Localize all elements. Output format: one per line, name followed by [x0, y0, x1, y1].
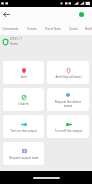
button[interactable]: Request output state — [3, 142, 44, 165]
staticText: Request the device status — [52, 100, 84, 108]
staticText: Notif — [85, 27, 92, 31]
staticText: Arm(Stay at home) — [55, 75, 82, 79]
staticText: Panel State — [45, 27, 61, 31]
button[interactable]: Arm — [3, 61, 44, 84]
button[interactable]: Notif — [84, 22, 92, 35]
staticText: Disarm — [18, 102, 29, 106]
staticText: Turn on the output — [10, 129, 37, 133]
button[interactable]: Arm(Stay at home) — [47, 61, 89, 84]
button[interactable]: Turn on the output — [3, 115, 44, 138]
button[interactable]: Disarm — [3, 88, 44, 111]
staticText: Zones — [69, 27, 78, 31]
button[interactable]: Events — [21, 22, 42, 35]
staticText: Commands — [2, 27, 19, 31]
button[interactable]: Request the device status — [47, 88, 89, 111]
staticText: Home — [10, 42, 18, 46]
button[interactable]: Commands — [0, 22, 21, 35]
staticText: GT31 / 1 — [10, 37, 23, 41]
staticText: Events — [27, 27, 37, 31]
button[interactable]: Device online — [77, 10, 86, 19]
button[interactable]: Back — [2, 10, 11, 19]
button[interactable]: Zones — [63, 22, 84, 35]
staticText: Arm — [21, 75, 27, 79]
staticText: Request output state — [9, 156, 39, 160]
button[interactable]: Turn off the output — [47, 115, 89, 138]
staticText: Turn off the output — [55, 129, 82, 133]
button[interactable]: Panel State — [42, 22, 63, 35]
